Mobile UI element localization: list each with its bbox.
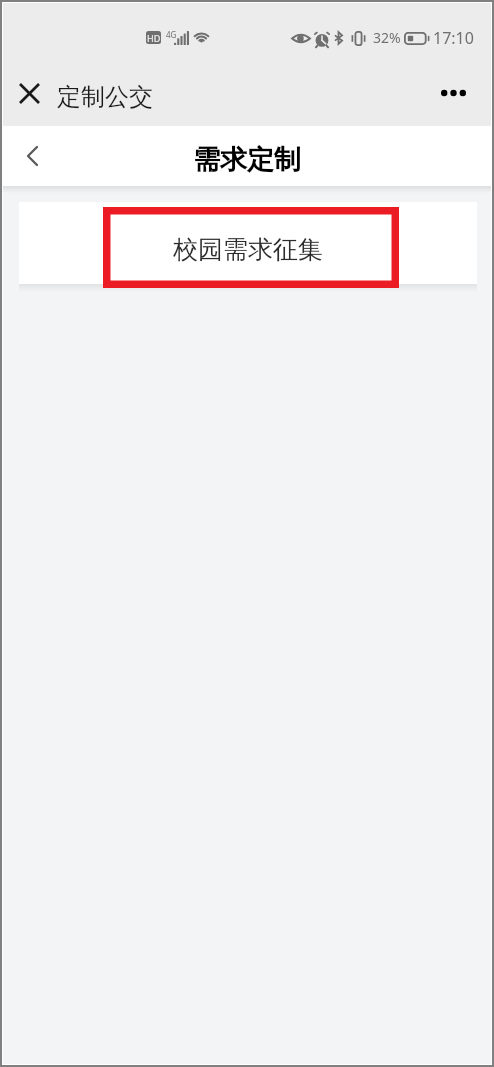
staticText: 定制公交 <box>57 82 153 112</box>
button[interactable]: Back <box>14 138 50 174</box>
staticText: HD <box>147 32 161 44</box>
staticText: 需求定制 <box>193 143 301 177</box>
staticText: 32% <box>373 28 401 47</box>
button[interactable]: More options <box>431 76 475 110</box>
staticText: 4G <box>166 29 177 40</box>
staticText: 17:10 <box>433 27 474 49</box>
button[interactable]: 校园需求征集 <box>19 202 477 284</box>
staticText: 校园需求征集 <box>173 234 323 265</box>
button[interactable]: Close <box>10 74 48 112</box>
